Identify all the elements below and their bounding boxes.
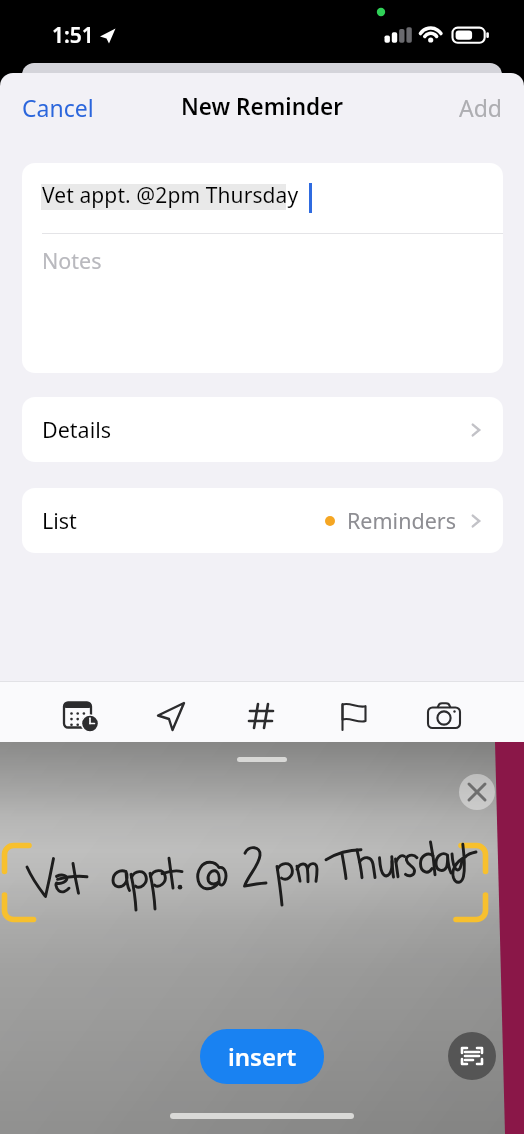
- staticText: New Reminder: [181, 91, 344, 122]
- button[interactable]: Date and time: [34, 681, 125, 750]
- button[interactable]: insert: [200, 1029, 324, 1084]
- staticText: Cancel: [22, 92, 94, 123]
- staticText: Details: [42, 415, 112, 444]
- button[interactable]: Close: [459, 774, 495, 810]
- button[interactable]: List: [22, 488, 503, 553]
- staticText: Vet appt. @2pm Thursday: [42, 181, 299, 210]
- staticText: Reminders: [347, 506, 456, 535]
- button[interactable]: Flag: [307, 681, 398, 750]
- button[interactable]: Cancel: [8, 84, 108, 131]
- button[interactable]: Details: [22, 397, 503, 462]
- button[interactable]: Add: [445, 84, 516, 131]
- button[interactable]: Scan text: [448, 1032, 496, 1080]
- staticText: List: [42, 506, 77, 535]
- staticText: 1:51: [52, 21, 94, 50]
- button[interactable]: Tag: [216, 681, 307, 750]
- button[interactable]: Add photo: [398, 681, 489, 750]
- button[interactable]: Location: [125, 681, 216, 750]
- staticText: insert: [228, 1040, 297, 1073]
- staticText: Add: [459, 92, 502, 123]
- staticText: Notes: [42, 246, 102, 275]
